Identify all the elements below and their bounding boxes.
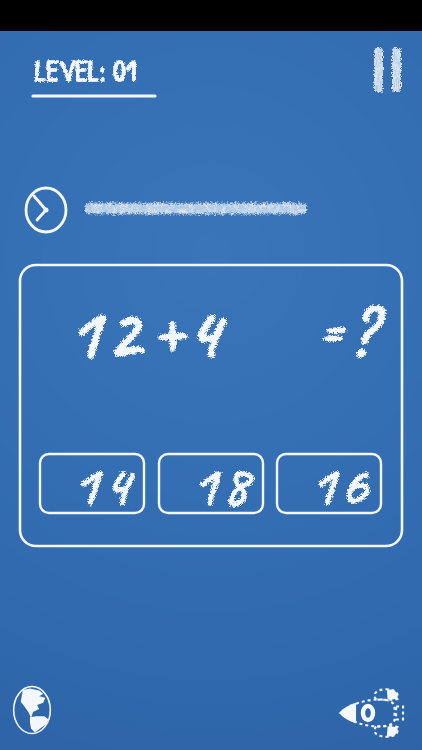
button[interactable]: Next level xyxy=(342,688,410,738)
button[interactable]: World map xyxy=(6,684,56,734)
button[interactable] xyxy=(275,455,382,512)
button[interactable] xyxy=(40,455,145,512)
button[interactable] xyxy=(155,455,265,512)
button[interactable]: Pause xyxy=(366,40,412,100)
